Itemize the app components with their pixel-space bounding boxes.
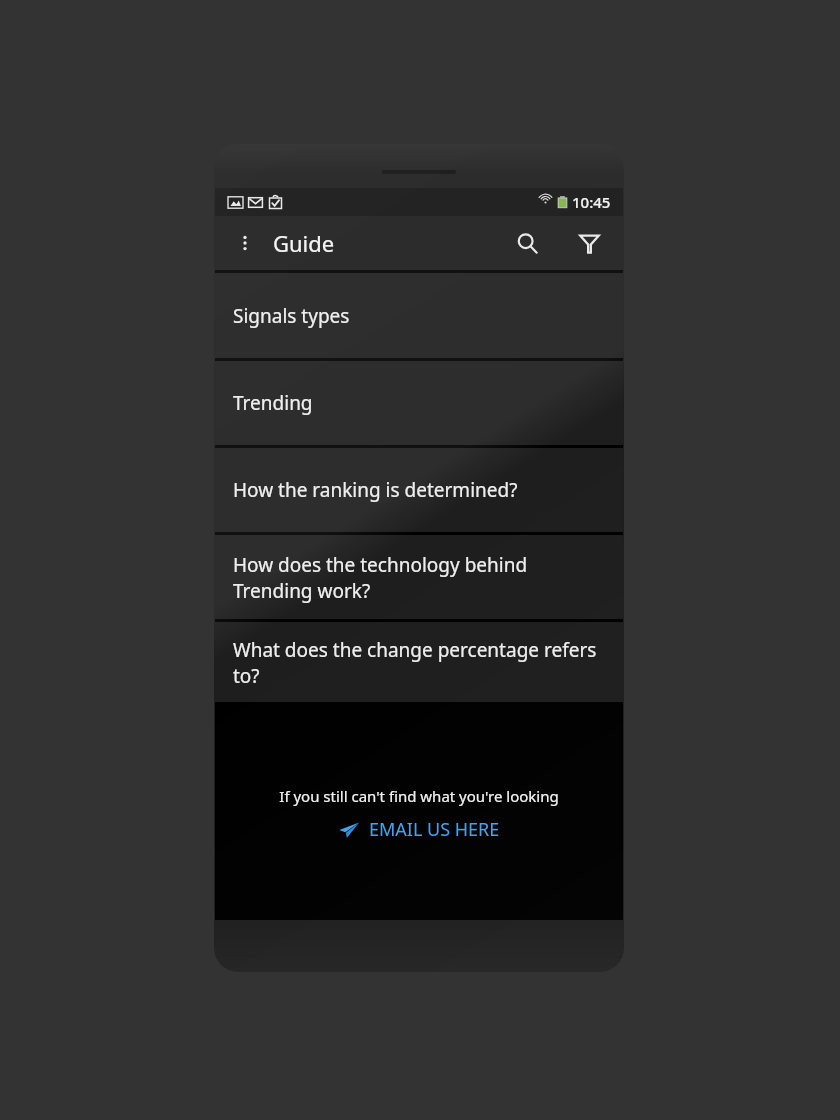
button[interactable]: EMAIL US HERE: [332, 815, 506, 844]
button[interactable]: Signals types: [215, 273, 623, 358]
staticText: Guide: [273, 228, 335, 258]
button[interactable]: Search: [507, 223, 547, 263]
button[interactable]: How does the technology behind Trending …: [215, 535, 623, 619]
staticText: How the ranking is determined?: [233, 477, 518, 503]
staticText: Signals types: [233, 303, 350, 329]
staticText: Trending: [233, 390, 313, 416]
button[interactable]: Trending: [215, 361, 623, 445]
staticText: If you still can't find what you're look…: [279, 786, 559, 806]
staticText: How does the technology behind Trending …: [233, 552, 528, 603]
button[interactable]: How the ranking is determined?: [215, 448, 623, 532]
staticText: EMAIL US HERE: [369, 817, 500, 842]
staticText: What does the change percentage refers t…: [233, 637, 607, 688]
button[interactable]: More options: [227, 225, 263, 261]
button[interactable]: Filter: [569, 223, 609, 263]
button[interactable]: What does the change percentage refers t…: [215, 622, 623, 702]
staticText: 10:45: [572, 192, 611, 212]
